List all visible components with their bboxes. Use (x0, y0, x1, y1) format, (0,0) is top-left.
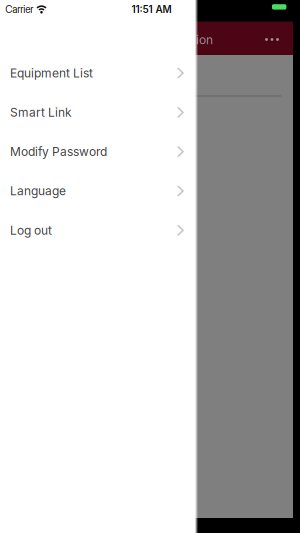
button[interactable]: Language (0, 171, 195, 211)
button[interactable]: Equipment List (0, 53, 195, 93)
staticText: Smart Link (10, 105, 72, 119)
button[interactable]: Modify Password (0, 132, 195, 171)
staticText: tion (192, 33, 213, 47)
staticText: Language (10, 184, 66, 198)
staticText: Modify Password (10, 145, 107, 159)
button[interactable]: More (265, 38, 279, 41)
button[interactable]: Log out (0, 211, 195, 250)
staticText: Equipment List (10, 66, 93, 80)
staticText: Carrier (5, 3, 33, 15)
button[interactable]: Smart Link (0, 93, 195, 132)
staticText: Log out (10, 223, 52, 237)
staticText: 11:51 AM (132, 3, 172, 15)
